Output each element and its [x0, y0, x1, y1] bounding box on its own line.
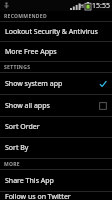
button[interactable]: Sort Order: [0, 117, 112, 137]
staticText: RECOMMENDED: [4, 13, 47, 20]
button[interactable]: Sort By: [0, 138, 112, 158]
staticText: MORE: [4, 161, 20, 168]
staticText: Sort By: [5, 143, 107, 153]
staticText: Lookout Security & Antivirus: [5, 27, 107, 37]
button[interactable]: Show all apps: [0, 95, 112, 116]
staticText: Share This App: [5, 176, 107, 186]
staticText: More Free Apps: [5, 47, 107, 57]
staticText: H: [80, 3, 84, 10]
staticText: Show system app: [5, 79, 99, 89]
button[interactable]: Lookout Security & Antivirus: [0, 22, 112, 41]
staticText: SETTINGS: [4, 64, 31, 71]
staticText: Show all apps: [5, 101, 99, 111]
button[interactable]: Follow us on Twitter: [0, 192, 112, 200]
button[interactable]: Show system app: [0, 73, 112, 94]
staticText: Follow us on Twitter: [5, 192, 107, 200]
staticText: 15:55: [92, 1, 110, 11]
button[interactable]: More Free Apps: [0, 42, 112, 61]
button[interactable]: Share This App: [0, 170, 112, 191]
staticText: Sort Order: [5, 122, 107, 132]
